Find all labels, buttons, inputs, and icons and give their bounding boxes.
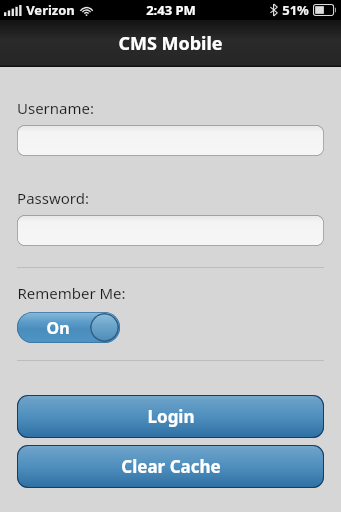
staticText: CMS Mobile	[118, 31, 223, 56]
staticText: Remember Me:	[17, 283, 126, 303]
button[interactable]: Clear Cache	[17, 445, 324, 488]
button[interactable]	[17, 215, 324, 246]
staticText: Username:	[17, 98, 94, 118]
button[interactable]: Login	[17, 395, 324, 438]
staticText: 2:43 PM	[146, 1, 196, 19]
staticText: Clear Cache	[121, 455, 221, 478]
button[interactable]	[17, 125, 324, 156]
staticText: Verizon	[26, 1, 75, 19]
staticText: Login	[147, 405, 195, 428]
staticText: 51%	[282, 1, 309, 19]
staticText: On	[46, 317, 70, 339]
staticText: Password:	[17, 188, 89, 208]
button[interactable]: Remember Me toggle, On	[17, 312, 120, 343]
